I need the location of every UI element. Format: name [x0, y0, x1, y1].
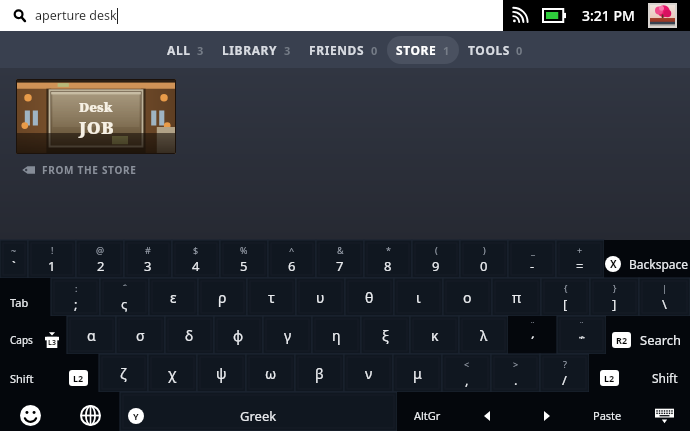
- button[interactable]: *: [364, 240, 412, 278]
- button[interactable]: ρ: [198, 278, 247, 316]
- button[interactable]: Emoji: [0, 392, 60, 431]
- button[interactable]: ω: [246, 354, 295, 392]
- button[interactable]: X: [604, 240, 690, 278]
- button[interactable]: <: [442, 354, 491, 392]
- button[interactable]: ι: [394, 278, 443, 316]
- button[interactable]: Y: [120, 392, 397, 431]
- button[interactable]: β: [295, 354, 344, 392]
- button[interactable]: ¨: [557, 316, 606, 354]
- button[interactable]: LIBRARY: [213, 36, 300, 64]
- button[interactable]: ε: [149, 278, 198, 316]
- button[interactable]: ψ: [197, 354, 246, 392]
- staticText: Greek: [240, 407, 277, 425]
- staticText: =: [576, 257, 584, 275]
- button[interactable]: aperture desk: [0, 0, 503, 31]
- button[interactable]: σ: [116, 316, 165, 354]
- button[interactable]: Desk: [16, 79, 176, 154]
- button[interactable]: %: [220, 240, 268, 278]
- button[interactable]: R2: [606, 316, 690, 354]
- staticText: [: [563, 295, 568, 313]
- staticText: ?: [563, 358, 567, 370]
- button[interactable]: π: [492, 278, 541, 316]
- button[interactable]: μ: [393, 354, 442, 392]
- button[interactable]: ^: [268, 240, 316, 278]
- button[interactable]: #: [124, 240, 172, 278]
- staticText: ΅: [122, 282, 128, 294]
- button[interactable]: Move cursor left: [457, 392, 517, 431]
- button[interactable]: ?: [540, 354, 589, 392]
- staticText: ,: [465, 371, 469, 389]
- staticText: ^: [289, 244, 295, 256]
- button[interactable]: L2: [589, 354, 690, 392]
- button[interactable]: χ: [148, 354, 197, 392]
- button[interactable]: ¨: [508, 316, 557, 354]
- button[interactable]: (: [412, 240, 460, 278]
- button[interactable]: !: [28, 240, 76, 278]
- button[interactable]: Move cursor right: [517, 392, 577, 431]
- staticText: Shift: [652, 370, 678, 386]
- button[interactable]: @: [76, 240, 124, 278]
- button[interactable]: κ: [410, 316, 459, 354]
- button[interactable]: ~: [0, 240, 28, 278]
- staticText: FROM THE STORE: [42, 163, 137, 177]
- button[interactable]: >: [491, 354, 540, 392]
- button[interactable]: ν: [344, 354, 393, 392]
- staticText: ΅: [577, 332, 587, 352]
- staticText: ι: [416, 288, 421, 307]
- button[interactable]: |: [639, 278, 690, 316]
- button[interactable]: γ: [263, 316, 312, 354]
- button[interactable]: &: [316, 240, 364, 278]
- staticText: `: [12, 257, 16, 275]
- button[interactable]: Shift: [0, 354, 99, 392]
- staticText: >: [513, 358, 519, 370]
- button[interactable]: Paste: [577, 392, 638, 431]
- button[interactable]: ALL: [158, 36, 213, 64]
- staticText: α: [87, 326, 96, 345]
- button[interactable]: Caps: [0, 316, 67, 354]
- button[interactable]: δ: [165, 316, 214, 354]
- staticText: 7: [336, 257, 344, 275]
- button[interactable]: TOOLS: [459, 36, 532, 64]
- staticText: !: [51, 244, 54, 256]
- button[interactable]: :: [51, 278, 100, 316]
- button[interactable]: Hide keyboard: [638, 392, 690, 431]
- staticText: Y: [133, 410, 139, 422]
- button[interactable]: ΅: [100, 278, 149, 316]
- button[interactable]: λ: [459, 316, 508, 354]
- staticText: 9: [432, 257, 440, 275]
- button[interactable]: η: [312, 316, 361, 354]
- button[interactable]: FROM THE STORE: [16, 159, 137, 181]
- button[interactable]: }: [590, 278, 639, 316]
- button[interactable]: Profile: [650, 5, 675, 26]
- staticText: STORE: [396, 42, 437, 58]
- button[interactable]: Tab: [0, 278, 51, 316]
- button[interactable]: τ: [247, 278, 296, 316]
- staticText: \: [662, 295, 667, 313]
- button[interactable]: _: [508, 240, 556, 278]
- button[interactable]: $: [172, 240, 220, 278]
- button[interactable]: φ: [214, 316, 263, 354]
- button[interactable]: STORE: [387, 36, 459, 64]
- button[interactable]: +: [556, 240, 604, 278]
- button[interactable]: ο: [443, 278, 492, 316]
- staticText: TOOLS: [468, 42, 510, 58]
- button[interactable]: θ: [345, 278, 394, 316]
- button[interactable]: υ: [296, 278, 345, 316]
- staticText: :: [75, 282, 78, 294]
- button[interactable]: α: [67, 316, 116, 354]
- staticText: /: [562, 371, 567, 389]
- staticText: JOB: [79, 116, 114, 139]
- button[interactable]: FRIENDS: [300, 36, 387, 64]
- staticText: φ: [233, 326, 244, 345]
- staticText: ): [483, 244, 486, 256]
- staticText: ε: [170, 288, 177, 307]
- button[interactable]: ξ: [361, 316, 410, 354]
- button[interactable]: Change language: [60, 392, 120, 431]
- button[interactable]: ): [460, 240, 508, 278]
- button[interactable]: ζ: [99, 354, 148, 392]
- button[interactable]: {: [541, 278, 590, 316]
- staticText: +: [577, 244, 583, 256]
- button[interactable]: AltGr: [397, 392, 457, 431]
- staticText: ς: [121, 295, 128, 313]
- staticText: %: [240, 244, 248, 256]
